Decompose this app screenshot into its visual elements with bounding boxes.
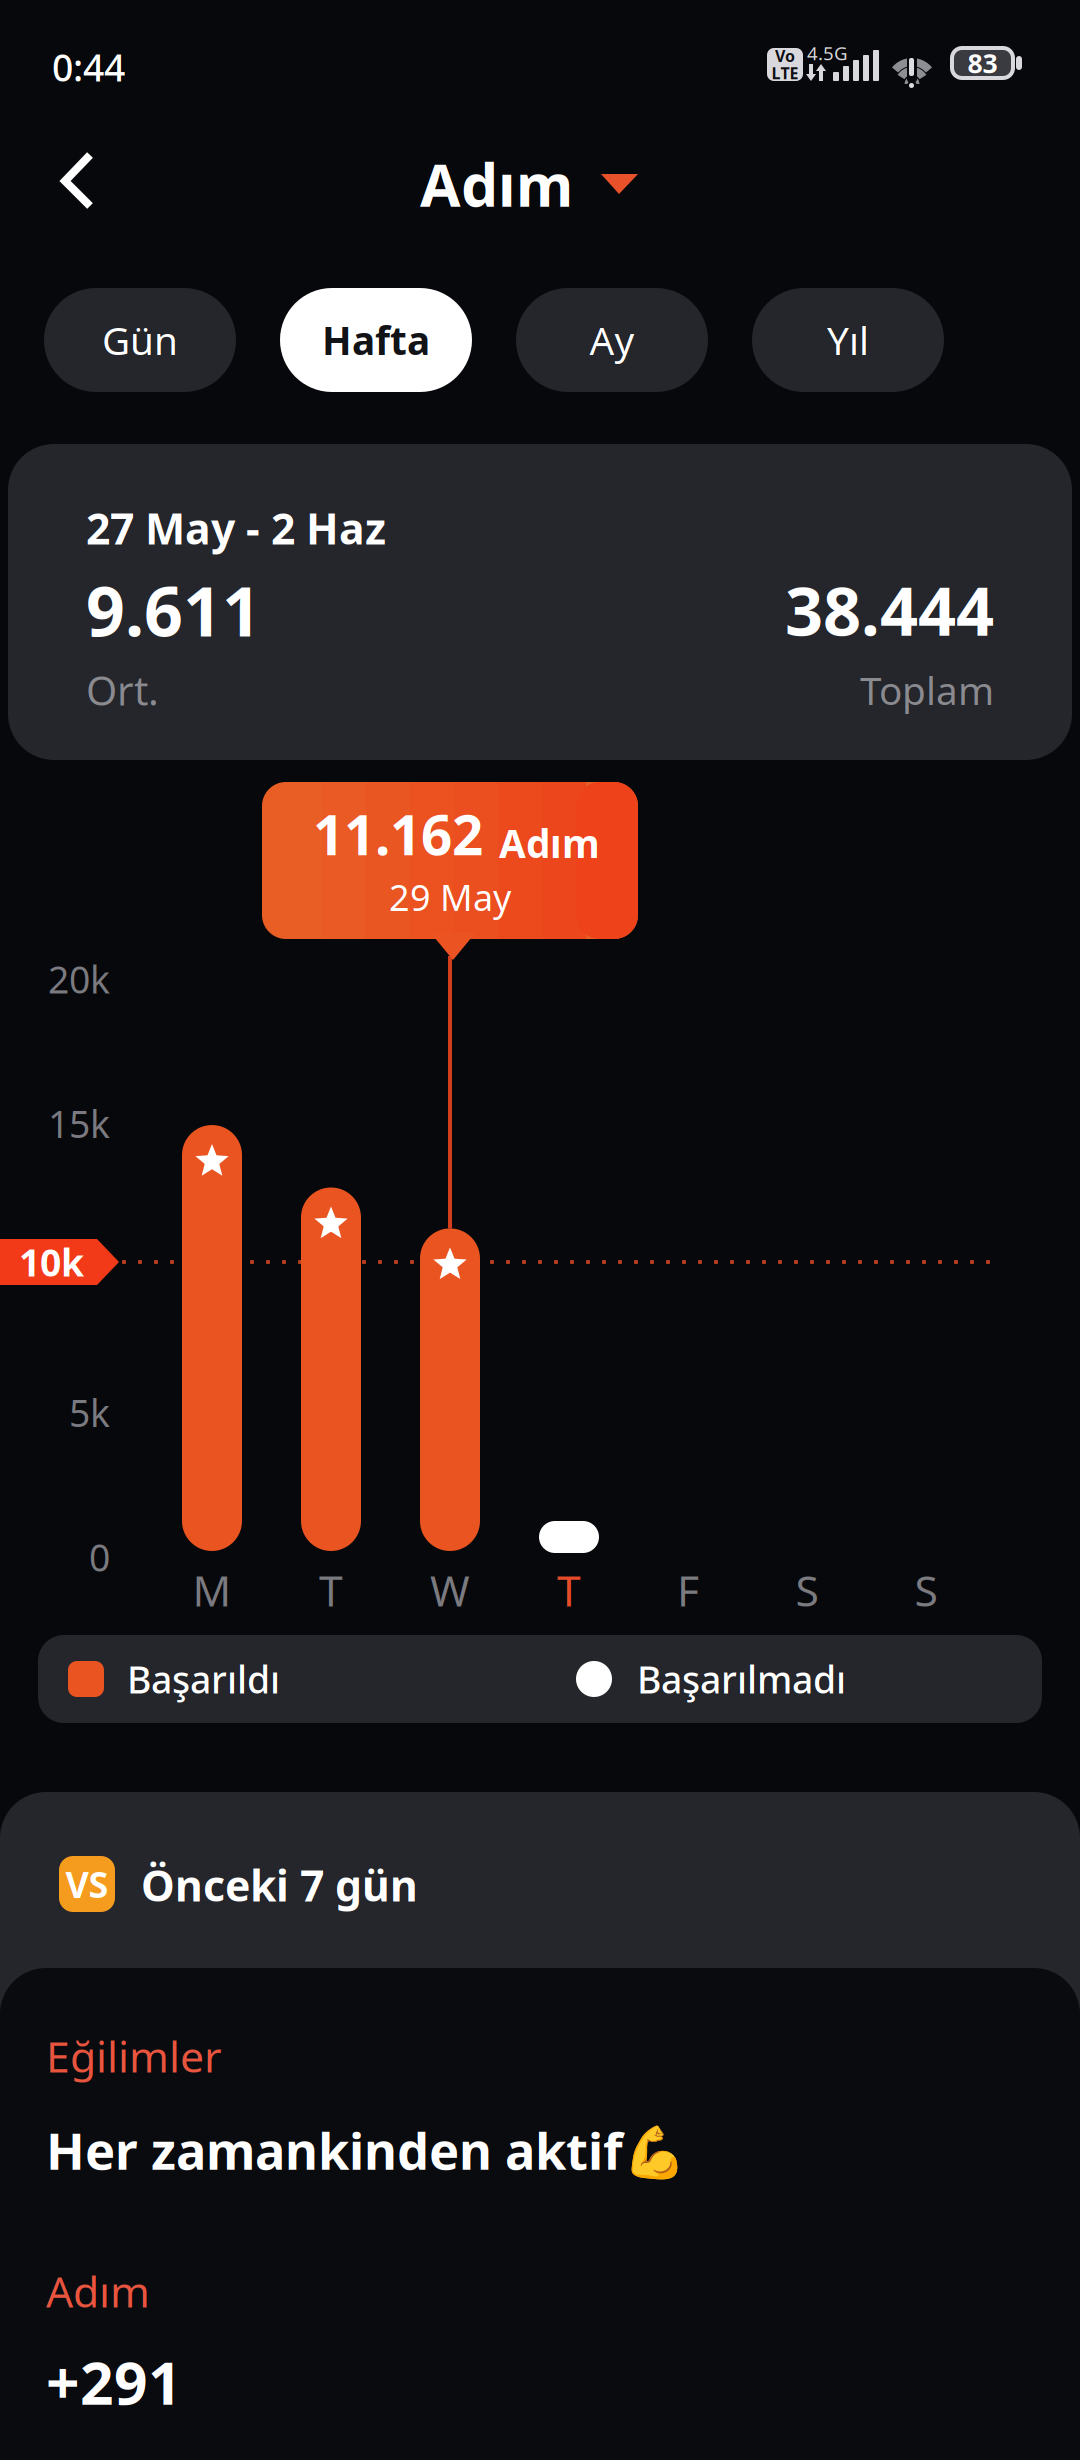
staticText: Adım (46, 2263, 150, 2319)
button[interactable]: VS (0, 1792, 1080, 1972)
staticText: 5k (69, 1388, 110, 1437)
staticText: LTE (771, 62, 798, 84)
staticText: VS (65, 1860, 108, 1908)
staticText: F (677, 1562, 699, 1618)
button[interactable]: Yıl (752, 288, 944, 392)
staticText: 0:44 (52, 42, 125, 92)
staticText: 4.5G (807, 41, 848, 65)
staticText: Her zamankinden aktif💪 (46, 2116, 686, 2184)
button[interactable]: Back (10, 126, 140, 236)
staticText: Yıl (827, 314, 869, 366)
staticText: 83 (967, 45, 997, 81)
staticText: 11.162 (313, 798, 483, 870)
staticText: 10k (19, 1237, 84, 1287)
staticText: 38.444 (785, 566, 994, 654)
staticText: Vo (775, 45, 795, 66)
staticText: Hafta (322, 314, 430, 366)
staticText: Gün (102, 314, 178, 366)
staticText: M (192, 1562, 231, 1618)
staticText: Ort. (86, 663, 159, 716)
staticText: Önceki 7 gün (141, 1857, 418, 1913)
button[interactable]: Adım (289, 126, 769, 242)
staticText: 0 (89, 1532, 110, 1582)
button[interactable]: Ay (516, 288, 708, 392)
button[interactable]: Gün (44, 288, 236, 392)
staticText: 9.611 (86, 565, 261, 655)
staticText: S (914, 1562, 937, 1618)
staticText: Başarıldı (127, 1654, 280, 1704)
staticText: S (795, 1562, 818, 1618)
staticText: Ay (589, 314, 634, 366)
staticText: Eğilimler (46, 2028, 222, 2084)
staticText: Başarılmadı (637, 1654, 846, 1704)
staticText: 15k (48, 1099, 110, 1148)
staticText: 27 May - 2 Haz (86, 500, 386, 556)
staticText: 29 May (389, 873, 511, 921)
button[interactable]: Hafta (280, 288, 472, 392)
staticText: T (319, 1562, 343, 1618)
staticText: W (430, 1562, 470, 1618)
staticText: Adım (420, 145, 573, 223)
staticText: 20k (48, 954, 110, 1004)
staticText: Toplam (860, 664, 994, 716)
staticText: Adım (499, 817, 600, 869)
staticText: +291 (46, 2343, 182, 2421)
staticText: T (557, 1562, 581, 1618)
